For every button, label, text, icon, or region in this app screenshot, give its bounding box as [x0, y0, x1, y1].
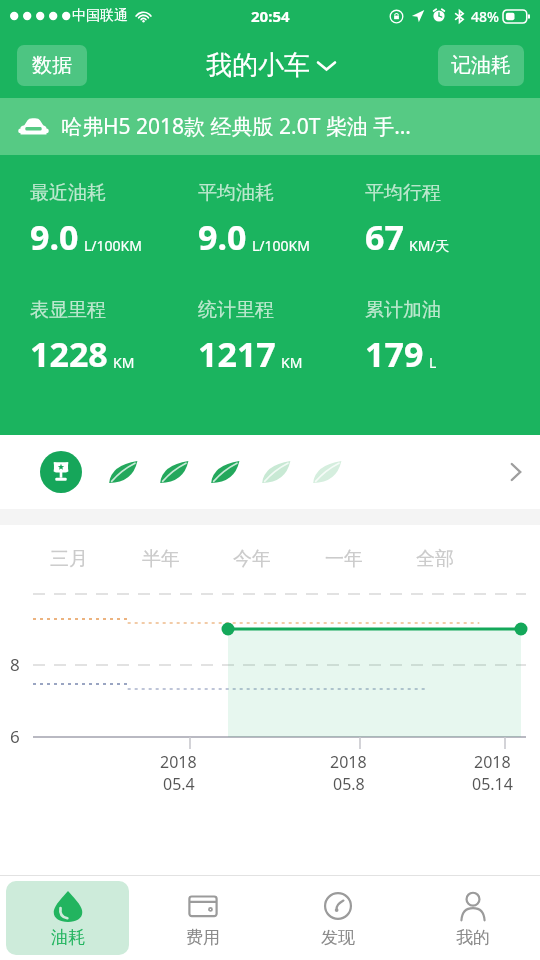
staticText: KM	[113, 353, 135, 372]
staticText: 平均油耗	[198, 181, 274, 205]
staticText: KM	[281, 353, 303, 372]
staticText: 三月	[50, 547, 88, 571]
other: More	[510, 462, 522, 482]
staticText: 2018	[474, 751, 511, 773]
staticText: 1217	[198, 331, 276, 377]
staticText: 2018	[160, 751, 197, 773]
button[interactable]: 我的小车	[198, 43, 343, 88]
button[interactable]: 今年	[227, 543, 277, 575]
staticText: 179	[365, 331, 424, 377]
staticText: 8	[10, 653, 20, 676]
button[interactable]: 记油耗	[438, 45, 524, 86]
staticText: 我的	[456, 927, 490, 948]
button[interactable]: 累计加油	[365, 298, 532, 377]
button[interactable]: 三月	[44, 543, 94, 575]
staticText: 哈弗H5 2018款 经典版 2.0T 柴油 手…	[61, 112, 411, 141]
staticText: 05.4	[163, 773, 195, 795]
button[interactable]: 我的	[411, 881, 534, 955]
staticText: L/100KM	[84, 236, 142, 255]
staticText: 中国联通	[72, 7, 128, 25]
staticText: 20:54	[251, 6, 290, 26]
button[interactable]: 半年	[136, 543, 186, 575]
staticText: 05.8	[333, 773, 365, 795]
staticText: 6	[10, 725, 20, 748]
staticText: 05.14	[472, 773, 513, 795]
staticText: 油耗	[51, 927, 85, 948]
staticText: 全部	[416, 547, 454, 571]
staticText: 9.0	[30, 214, 79, 260]
staticText: 统计里程	[198, 298, 274, 322]
staticText: 表显里程	[30, 298, 106, 322]
button[interactable]: 平均油耗	[198, 181, 365, 260]
button[interactable]: 数据	[17, 45, 87, 86]
button[interactable]: 哈弗H5 2018款 经典版 2.0T 柴油 手…	[0, 98, 540, 155]
button[interactable]: 表显里程	[30, 298, 198, 377]
staticText: L/100KM	[252, 236, 310, 255]
staticText: 2018	[330, 751, 367, 773]
button[interactable]: 油耗	[6, 881, 129, 955]
staticText: 最近油耗	[30, 181, 106, 205]
button[interactable]: 统计里程	[198, 298, 365, 377]
button[interactable]: 最近油耗	[30, 181, 198, 260]
staticText: 平均行程	[365, 181, 441, 205]
button[interactable]: 发现	[276, 881, 399, 955]
staticText: KM/天	[409, 236, 450, 255]
staticText: 发现	[321, 927, 355, 948]
staticText: 半年	[142, 547, 180, 571]
staticText: 48%	[471, 7, 499, 26]
button[interactable]: More	[0, 435, 540, 509]
staticText: 累计加油	[365, 298, 441, 322]
staticText: 一年	[325, 547, 363, 571]
button[interactable]: 一年	[319, 543, 369, 575]
staticText: 今年	[233, 547, 271, 571]
staticText: 9.0	[198, 214, 247, 260]
staticText: 记油耗	[451, 53, 511, 78]
staticText: 1228	[30, 331, 108, 377]
staticText: 我的小车	[206, 49, 310, 82]
staticText: L	[429, 353, 437, 372]
button[interactable]: 费用	[141, 881, 264, 955]
button[interactable]: 平均行程	[365, 181, 532, 260]
staticText: 67	[365, 214, 404, 260]
staticText: 数据	[32, 53, 72, 78]
staticText: 费用	[186, 927, 220, 948]
button[interactable]: 全部	[410, 543, 460, 575]
